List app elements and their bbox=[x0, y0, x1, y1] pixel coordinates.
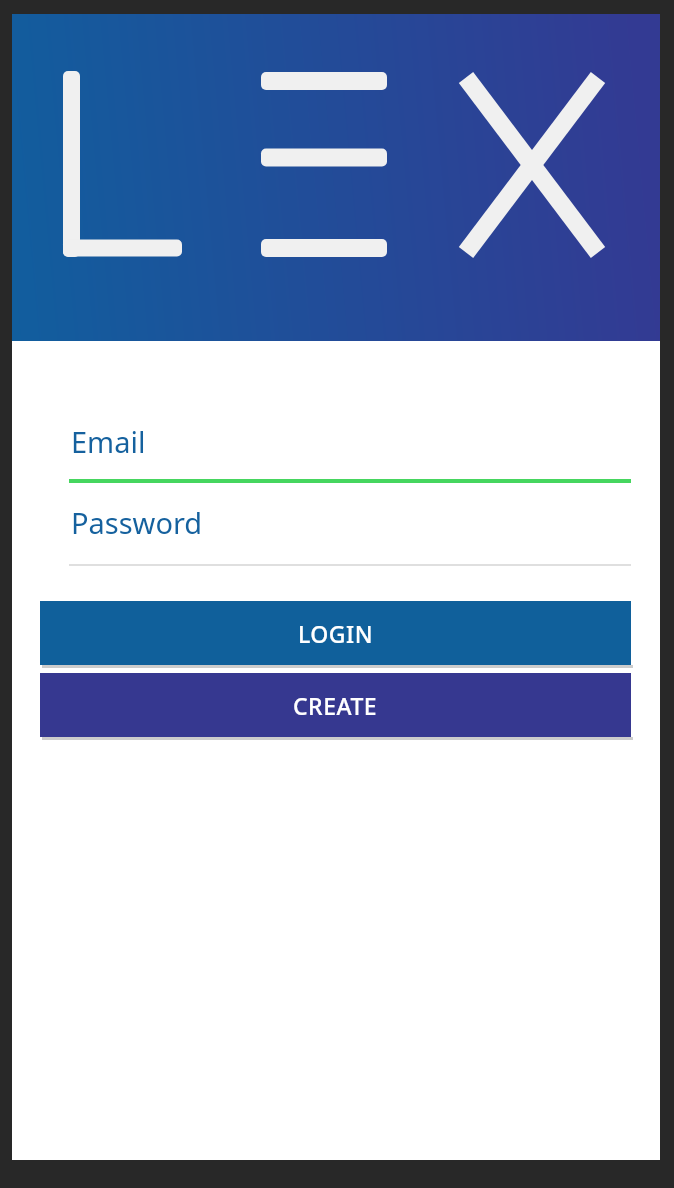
staticText: LOGIN bbox=[298, 618, 374, 649]
button[interactable]: LOGIN bbox=[40, 601, 631, 665]
button[interactable]: Email bbox=[69, 422, 631, 484]
staticText: Password bbox=[71, 503, 203, 542]
button[interactable]: CREATE bbox=[40, 673, 631, 737]
button[interactable]: Password bbox=[69, 503, 631, 563]
staticText: Email bbox=[71, 422, 146, 461]
staticText: CREATE bbox=[293, 690, 378, 721]
